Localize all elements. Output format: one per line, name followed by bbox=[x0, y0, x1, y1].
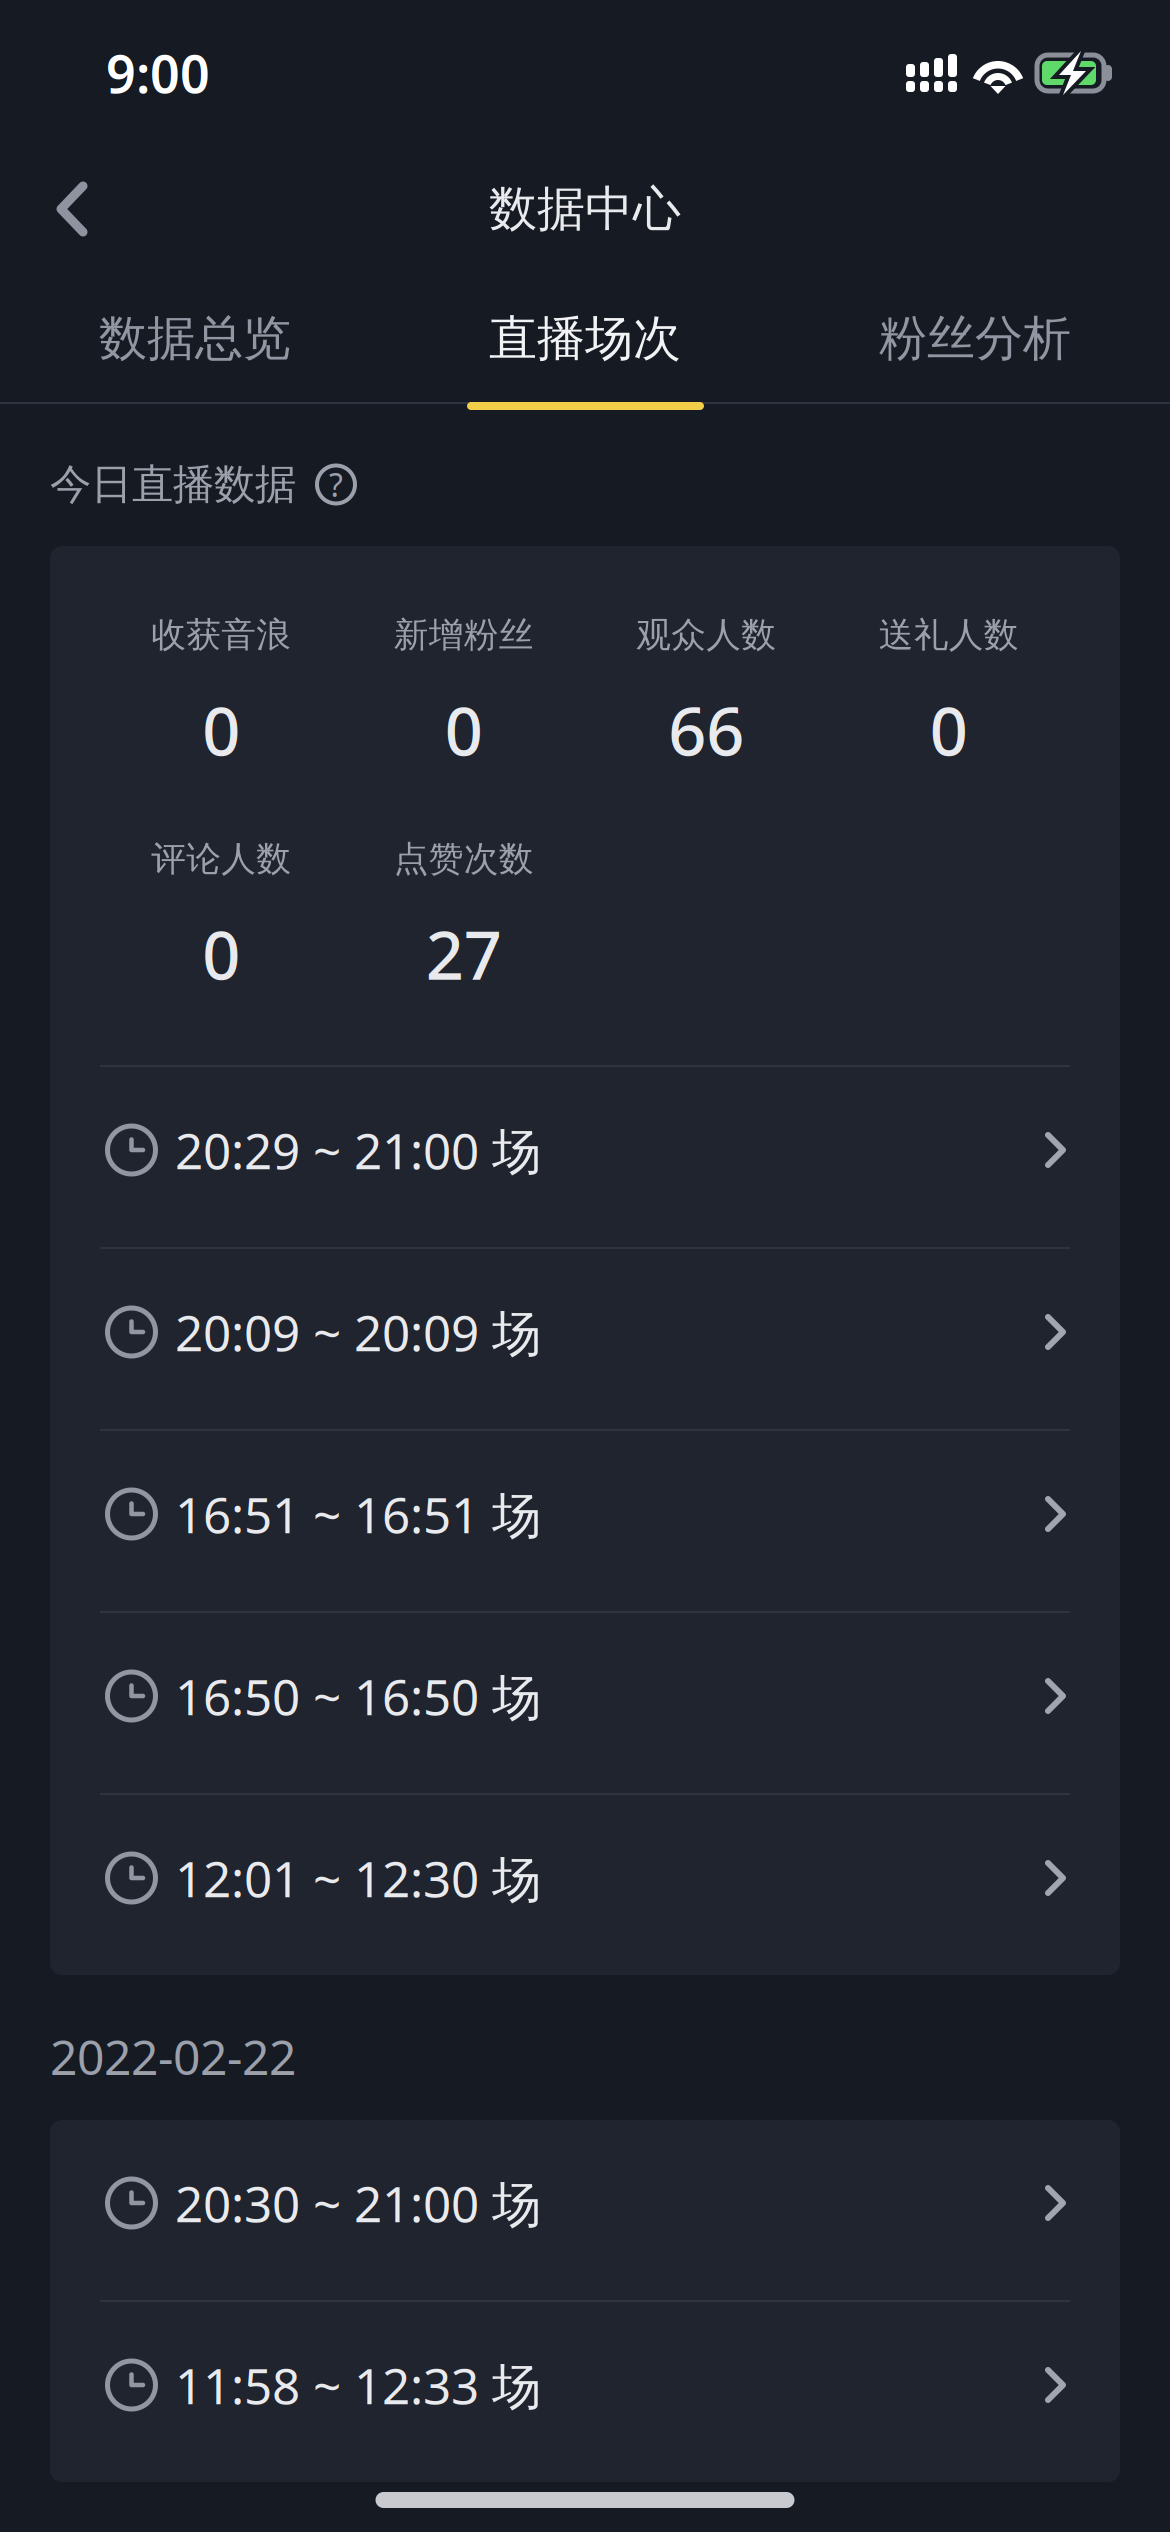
staticText: 16:50 ~ 16:50 场 bbox=[175, 1663, 541, 1729]
staticText: 66 bbox=[668, 686, 744, 774]
button[interactable]: 20:09 ~ 20:09 场 bbox=[50, 1249, 1120, 1429]
button[interactable]: 11:58 ~ 12:33 场 bbox=[50, 2302, 1120, 2482]
staticText: 9:00 bbox=[106, 38, 210, 108]
staticText: 20:09 ~ 20:09 场 bbox=[175, 1299, 541, 1365]
staticText: 数据中心 bbox=[489, 179, 681, 238]
staticText: 0 bbox=[202, 910, 240, 998]
staticText: 直播场次 bbox=[489, 309, 681, 368]
staticText: 收获音浪 bbox=[151, 614, 291, 656]
staticText: 2022-02-22 bbox=[50, 2025, 296, 2088]
staticText: 0 bbox=[202, 686, 240, 774]
staticText: 新增粉丝 bbox=[394, 614, 534, 656]
staticText: 评论人数 bbox=[151, 838, 291, 880]
staticText: 0 bbox=[930, 686, 968, 774]
button[interactable]: 数据总览 bbox=[0, 268, 390, 402]
button[interactable]: Back bbox=[24, 154, 120, 264]
staticText: 16:51 ~ 16:51 场 bbox=[175, 1481, 541, 1547]
button[interactable]: 16:51 ~ 16:51 场 bbox=[50, 1431, 1120, 1611]
staticText: 送礼人数 bbox=[879, 614, 1019, 656]
staticText: 27 bbox=[426, 910, 502, 998]
staticText: 20:30 ~ 21:00 场 bbox=[175, 2170, 541, 2236]
button[interactable]: 直播场次 bbox=[390, 268, 780, 402]
button[interactable]: 粉丝分析 bbox=[780, 268, 1170, 402]
staticText: 12:01 ~ 12:30 场 bbox=[175, 1845, 541, 1911]
staticText: 点赞次数 bbox=[394, 838, 534, 880]
button[interactable]: 16:50 ~ 16:50 场 bbox=[50, 1613, 1120, 1793]
staticText: 观众人数 bbox=[636, 614, 776, 656]
staticText: 0 bbox=[445, 686, 483, 774]
button[interactable]: 12:01 ~ 12:30 场 bbox=[50, 1795, 1120, 1975]
staticText: 数据总览 bbox=[99, 309, 291, 368]
staticText: 11:58 ~ 12:33 场 bbox=[175, 2352, 541, 2418]
button[interactable]: Help bbox=[312, 460, 360, 508]
button[interactable]: 20:29 ~ 21:00 场 bbox=[50, 1067, 1120, 1247]
staticText: 粉丝分析 bbox=[879, 309, 1071, 368]
staticText: 20:29 ~ 21:00 场 bbox=[175, 1117, 541, 1183]
button[interactable]: 20:30 ~ 21:00 场 bbox=[50, 2120, 1120, 2300]
staticText: ? bbox=[329, 463, 343, 506]
staticText: 今日直播数据 bbox=[50, 459, 296, 510]
